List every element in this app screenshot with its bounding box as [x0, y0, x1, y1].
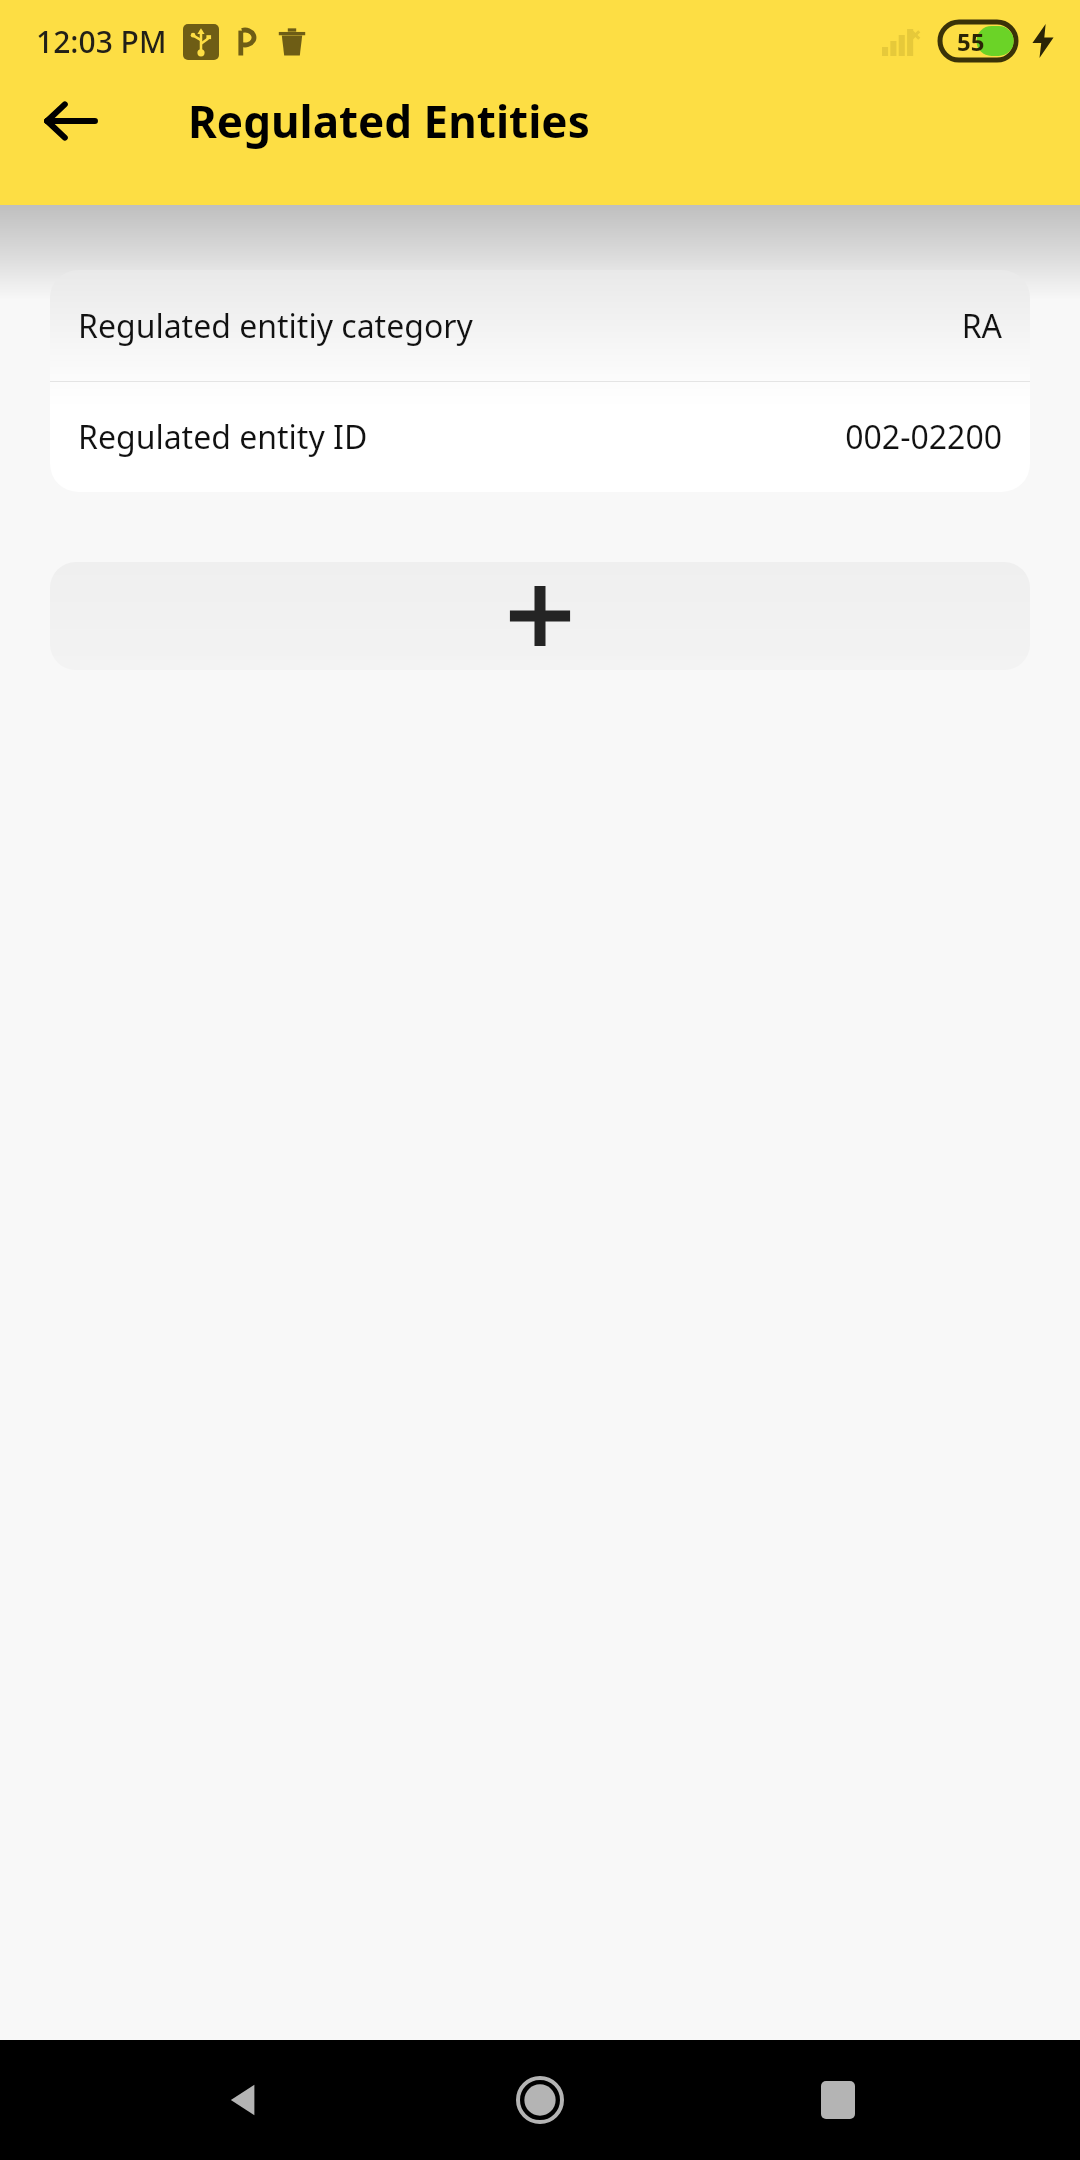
button[interactable]: Home — [485, 2045, 595, 2155]
button[interactable]: Recent apps — [783, 2045, 893, 2155]
button[interactable]: Regulated entitiy category — [50, 270, 1030, 381]
staticText: Regulated entitiy category — [78, 304, 473, 348]
button[interactable]: Regulated entity ID — [50, 382, 1030, 492]
staticText: Regulated entity ID — [78, 415, 368, 459]
button[interactable]: Add regulated entity — [50, 562, 1030, 670]
button[interactable]: Back — [22, 73, 118, 169]
staticText: Regulated Entities — [188, 91, 590, 151]
staticText: 12:03 PM — [36, 21, 167, 62]
staticText: 002-02200 — [845, 415, 1002, 459]
staticText: 55 — [957, 25, 985, 58]
staticText: RA — [961, 304, 1002, 348]
button[interactable]: Back — [188, 2045, 298, 2155]
